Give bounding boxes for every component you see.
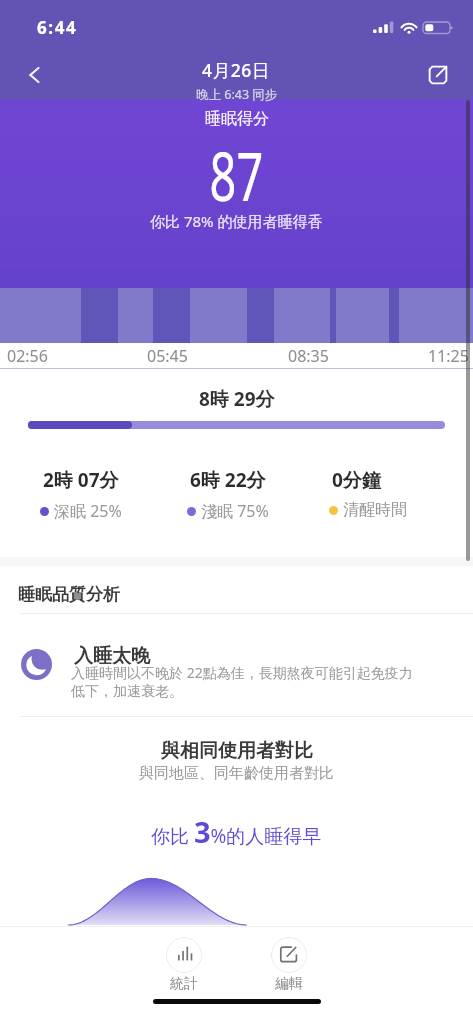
staticText: 8時 29分 — [199, 386, 275, 412]
staticText: 02:56 — [7, 345, 48, 367]
staticText: 11:25 — [428, 345, 469, 367]
staticText: 淺眠 75% — [201, 500, 269, 522]
staticText: 統計 — [170, 975, 198, 993]
staticText: 與相同使用者對比 — [161, 739, 313, 763]
staticText: 晚上 6:43 同步 — [196, 86, 278, 103]
button[interactable]: Back — [20, 61, 48, 89]
staticText: 清醒時間 — [343, 500, 407, 520]
staticText: 與同地區、同年齡使用者對比 — [139, 764, 334, 783]
staticText: 6:44 — [37, 16, 78, 39]
staticText: 入睡時間以不晚於 22點為佳，長期熬夜可能引起免疫力低下，加速衰老。 — [71, 663, 419, 701]
staticText: 你比 3%的人睡得早 — [151, 812, 322, 851]
staticText: 87 — [210, 129, 263, 220]
staticText: 4月26日 — [202, 58, 271, 82]
staticText: 深眠 25% — [54, 500, 122, 522]
staticText: 2時 07分 — [43, 467, 119, 493]
button[interactable]: Share — [427, 64, 449, 86]
staticText: 睡眠品質分析 — [18, 584, 120, 605]
button[interactable]: Statistics — [166, 937, 202, 993]
staticText: 08:35 — [288, 345, 329, 367]
staticText: 0分鐘 — [332, 467, 381, 493]
staticText: 6時 22分 — [190, 467, 266, 493]
button[interactable]: Edit — [271, 937, 307, 993]
staticText: 編輯 — [275, 975, 303, 993]
staticText: 睡眠得分 — [205, 109, 269, 129]
staticText: 05:45 — [147, 345, 188, 367]
staticText: 入睡太晚 — [74, 644, 150, 668]
staticText: 你比 78% 的使用者睡得香 — [150, 211, 323, 231]
